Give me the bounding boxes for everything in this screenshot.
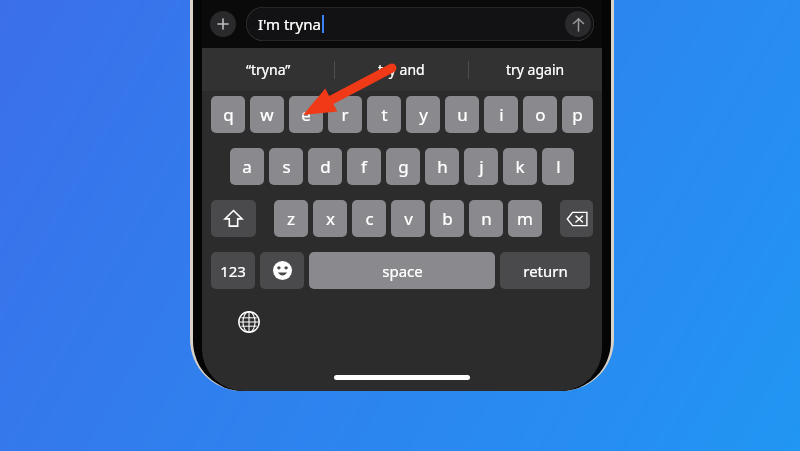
- button[interactable]: w: [250, 96, 284, 133]
- staticText: return: [523, 261, 568, 281]
- button[interactable]: try again: [469, 48, 602, 91]
- button[interactable]: j: [464, 148, 498, 185]
- staticText: y: [419, 103, 428, 126]
- staticText: m: [517, 207, 533, 230]
- staticText: k: [515, 155, 525, 178]
- button[interactable]: p: [562, 96, 593, 133]
- staticText: z: [287, 207, 295, 230]
- button[interactable]: Emoji: [260, 252, 304, 289]
- button[interactable]: l: [542, 148, 574, 185]
- staticText: n: [481, 207, 492, 230]
- button[interactable]: “tryna”: [202, 48, 334, 91]
- button[interactable]: y: [406, 96, 440, 133]
- button[interactable]: 123: [211, 252, 255, 289]
- button[interactable]: r: [328, 96, 362, 133]
- button[interactable]: u: [445, 96, 479, 133]
- button[interactable]: k: [503, 148, 537, 185]
- button[interactable]: try and: [335, 48, 468, 91]
- staticText: o: [535, 103, 546, 126]
- staticText: try again: [506, 60, 565, 79]
- button[interactable]: return: [500, 252, 590, 289]
- button[interactable]: g: [386, 148, 420, 185]
- staticText: 123: [220, 261, 246, 281]
- button[interactable]: q: [211, 96, 245, 133]
- button[interactable]: c: [352, 200, 386, 237]
- button[interactable]: n: [469, 200, 503, 237]
- staticText: I'm tryna: [258, 14, 321, 34]
- button[interactable]: m: [508, 200, 542, 237]
- staticText: r: [341, 103, 349, 126]
- staticText: p: [572, 103, 583, 126]
- staticText: c: [365, 207, 374, 230]
- staticText: d: [320, 155, 331, 178]
- staticText: g: [398, 155, 409, 178]
- staticText: w: [260, 103, 274, 126]
- staticText: b: [442, 207, 453, 230]
- button[interactable]: Shift: [211, 200, 256, 237]
- staticText: q: [223, 103, 234, 126]
- staticText: u: [457, 103, 468, 126]
- button[interactable]: o: [523, 96, 557, 133]
- button[interactable]: h: [425, 148, 459, 185]
- button[interactable]: b: [430, 200, 464, 237]
- button[interactable]: Change keyboard language: [234, 307, 264, 337]
- button[interactable]: Delete: [560, 200, 593, 237]
- button[interactable]: t: [367, 96, 401, 133]
- staticText: x: [326, 207, 335, 230]
- staticText: try and: [378, 60, 425, 79]
- staticText: e: [301, 103, 311, 126]
- staticText: t: [381, 103, 388, 126]
- staticText: l: [556, 155, 561, 178]
- button[interactable]: Add attachment: [210, 11, 236, 37]
- button[interactable]: i: [484, 96, 518, 133]
- button[interactable]: d: [308, 148, 342, 185]
- staticText: space: [382, 261, 423, 281]
- staticText: “tryna”: [246, 60, 291, 79]
- staticText: s: [282, 155, 291, 178]
- staticText: h: [437, 155, 448, 178]
- button[interactable]: e: [289, 96, 323, 133]
- button[interactable]: s: [269, 148, 303, 185]
- staticText: j: [479, 155, 484, 178]
- button[interactable]: z: [274, 200, 308, 237]
- button[interactable]: a: [230, 148, 264, 185]
- staticText: a: [242, 155, 252, 178]
- button[interactable]: f: [347, 148, 381, 185]
- button[interactable]: v: [391, 200, 425, 237]
- button[interactable]: I'm tryna: [246, 7, 594, 41]
- button[interactable]: x: [313, 200, 347, 237]
- staticText: i: [499, 103, 504, 126]
- staticText: v: [404, 207, 413, 230]
- button[interactable]: space: [309, 252, 495, 289]
- button[interactable]: Send: [565, 11, 591, 37]
- staticText: f: [361, 155, 367, 178]
